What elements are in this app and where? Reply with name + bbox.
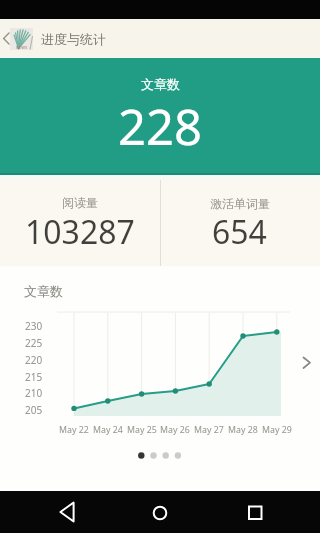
staticText: May 24 <box>93 424 123 436</box>
button[interactable] <box>0 25 14 51</box>
button[interactable] <box>219 491 290 533</box>
staticText: 654 <box>212 210 267 254</box>
button[interactable] <box>124 491 196 533</box>
staticText: NEWS <box>16 45 28 50</box>
staticText: 220 <box>25 353 43 367</box>
staticText: May 28 <box>228 424 258 436</box>
staticText: 103287 <box>25 210 135 254</box>
staticText: 激活单词量 <box>210 196 270 211</box>
staticText: 文章数 <box>141 76 180 92</box>
staticText: 阅读量 <box>62 195 98 210</box>
staticText: May 27 <box>194 424 224 436</box>
staticText: 210 <box>25 386 43 400</box>
staticText: 文章数 <box>24 283 63 299</box>
staticText: May 26 <box>160 424 190 436</box>
button[interactable]: NEWS <box>10 28 33 50</box>
staticText: May 29 <box>262 424 292 436</box>
staticText: May 22 <box>59 424 89 436</box>
staticText: 205 <box>25 403 43 417</box>
staticText: 228 <box>118 93 203 157</box>
staticText: 230 <box>25 319 43 333</box>
staticText: 225 <box>25 336 43 350</box>
staticText: 进度与统计 <box>41 31 106 47</box>
button[interactable] <box>31 491 102 533</box>
button[interactable]: 文章数 <box>0 266 320 491</box>
button[interactable] <box>0 175 160 266</box>
staticText: May 25 <box>127 424 157 436</box>
staticText: 215 <box>25 370 43 384</box>
